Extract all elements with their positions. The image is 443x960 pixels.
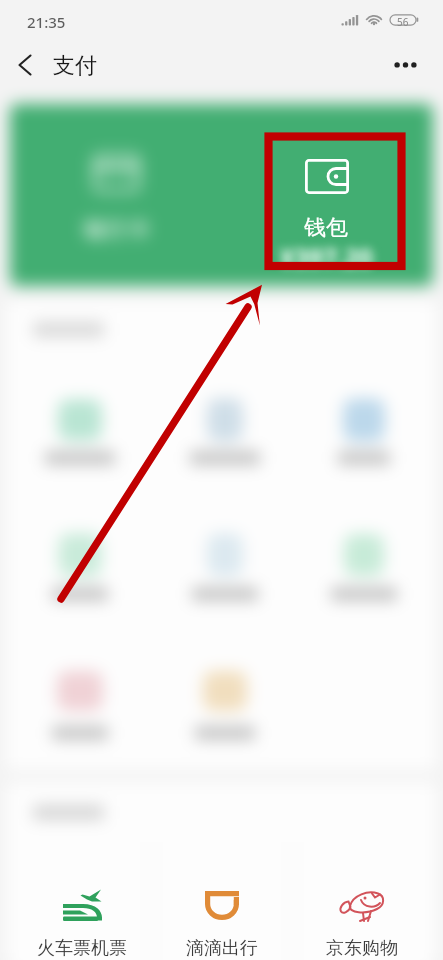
staticText: 银行卡	[84, 216, 150, 244]
staticText: 钱包	[304, 214, 348, 242]
staticText: 滴滴出行	[186, 937, 258, 960]
button[interactable]: More options	[382, 42, 428, 88]
staticText: 支付	[53, 52, 97, 80]
staticText: 火车票机票	[37, 937, 127, 960]
staticText: 56	[397, 15, 409, 29]
button[interactable]: Back	[2, 42, 48, 88]
staticText: 京东购物	[326, 937, 398, 960]
button[interactable]: 滴滴出行	[152, 848, 292, 960]
staticText: ¥397.20	[280, 240, 373, 274]
staticText: 21:35	[27, 12, 66, 32]
button[interactable]: 钱包	[283, 152, 375, 248]
button[interactable]: 京东购物	[292, 848, 432, 960]
button[interactable]: 火车票机票	[12, 848, 152, 960]
